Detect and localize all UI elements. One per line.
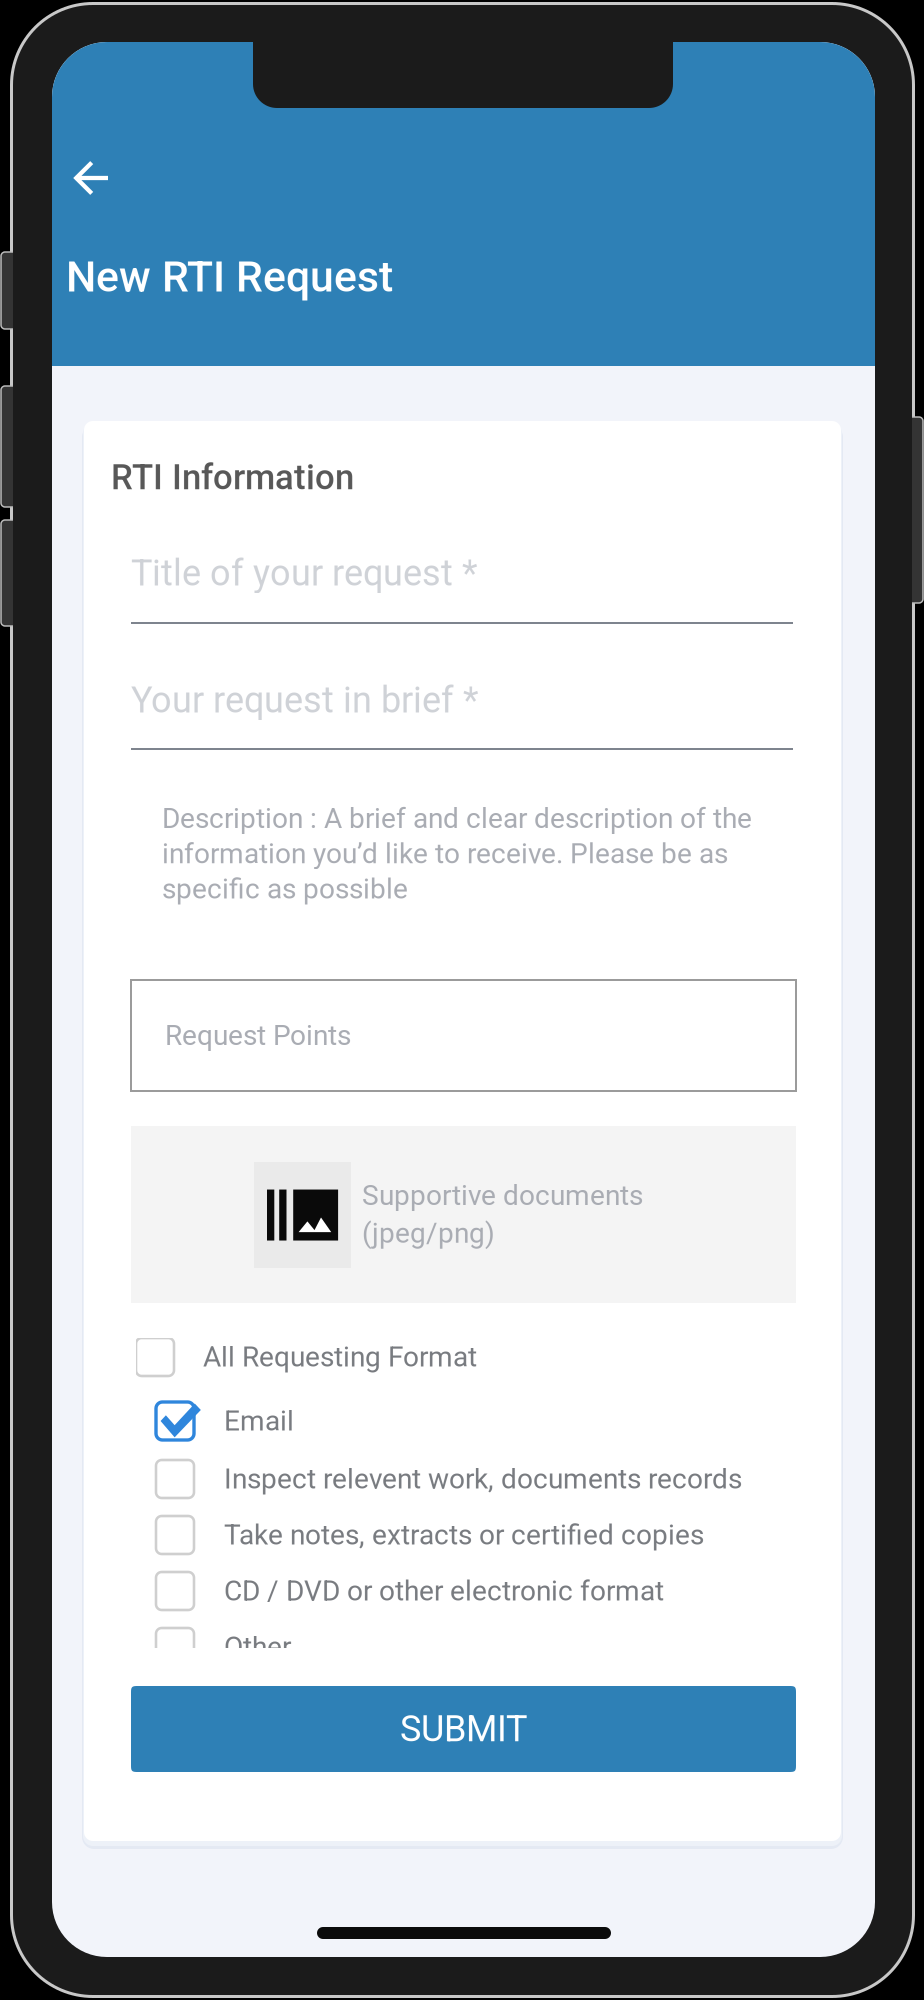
- staticText: SUBMIT: [400, 1708, 527, 1750]
- staticText: Description : A brief and clear descript…: [162, 802, 752, 905]
- staticText: New RTI Request: [66, 252, 393, 302]
- staticText: Email: [224, 1405, 294, 1437]
- staticText: RTI Information: [111, 457, 354, 498]
- staticText: Take notes, extracts or certified copies: [224, 1519, 704, 1551]
- staticText: CD / DVD or other electronic format: [224, 1575, 664, 1607]
- staticText: Inspect relevent work, documents records: [224, 1463, 742, 1495]
- staticText: Other: [224, 1631, 291, 1663]
- button[interactable]: Inspect relevent work, documents records: [156, 1460, 742, 1498]
- button[interactable]: Back: [64, 151, 118, 205]
- button[interactable]: Request Points: [131, 980, 796, 1091]
- button[interactable]: Take notes, extracts or certified copies: [156, 1516, 704, 1554]
- button[interactable]: Email: [156, 1402, 294, 1440]
- staticText: Your request in brief *: [131, 679, 479, 721]
- button[interactable]: Other: [156, 1628, 291, 1666]
- staticText: Request Points: [165, 1019, 351, 1052]
- staticText: Title of your request *: [131, 552, 478, 594]
- button[interactable]: Supportive documents: [131, 1126, 796, 1303]
- staticText: All Requesting Format: [203, 1341, 477, 1373]
- staticText: Supportive documents: [362, 1179, 643, 1212]
- staticText: (jpeg/png): [362, 1217, 495, 1250]
- button[interactable]: CD / DVD or other electronic format: [156, 1572, 664, 1610]
- button[interactable]: All Requesting Format: [136, 1338, 477, 1376]
- button[interactable]: SUBMIT: [131, 1686, 796, 1772]
